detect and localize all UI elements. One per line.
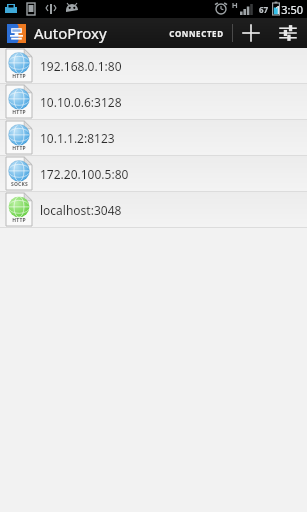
button[interactable]: HTTP [0, 48, 307, 83]
staticText: CONNECTED [169, 28, 224, 39]
staticText: AutoProxy [34, 23, 107, 43]
staticText: 192.168.0.1:80 [40, 58, 122, 74]
staticText: HTTP [12, 217, 26, 224]
staticText: 172.20.100.5:80 [40, 166, 129, 182]
staticText: 10.1.1.2:8123 [40, 130, 115, 146]
button[interactable]: Settings [269, 18, 307, 48]
button[interactable]: HTTP [0, 192, 307, 227]
button[interactable]: SOCKS [0, 156, 307, 191]
staticText: HTTP [12, 109, 26, 116]
button[interactable]: HTTP [0, 120, 307, 155]
staticText: 67 [259, 4, 269, 15]
staticText: HTTP [12, 73, 26, 80]
staticText: SOCKS [11, 181, 28, 188]
staticText: 10.10.0.6:3128 [40, 94, 122, 110]
button[interactable]: Add proxy [233, 18, 269, 48]
staticText: 13:50 [275, 2, 304, 17]
button[interactable]: CONNECTED [161, 18, 232, 48]
staticText: HTTP [12, 145, 26, 152]
staticText: localhost:3048 [40, 202, 122, 218]
button[interactable]: HTTP [0, 84, 307, 119]
button[interactable]: AutoProxy [7, 23, 111, 43]
